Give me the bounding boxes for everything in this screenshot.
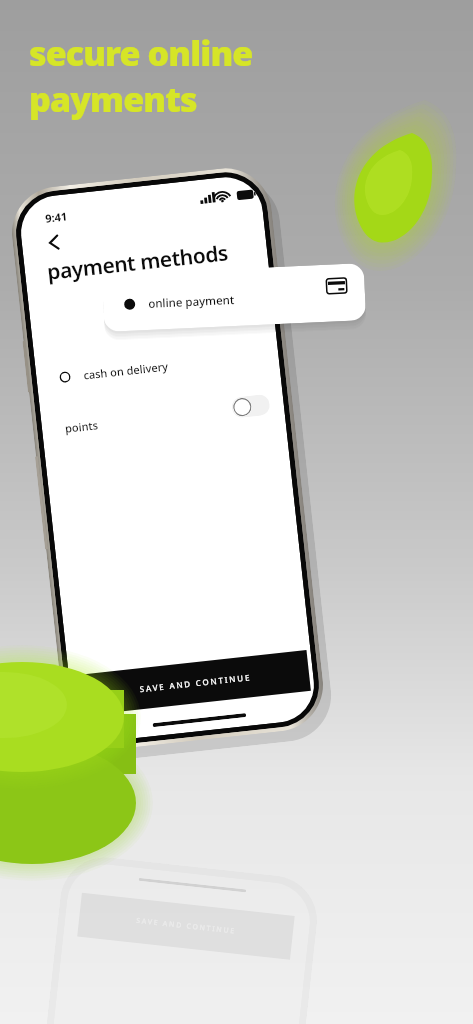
button[interactable]: online payment — [102, 263, 366, 332]
button[interactable]: Back — [40, 228, 68, 256]
button[interactable]: Toggle points — [231, 394, 271, 419]
staticText: online payment — [148, 292, 235, 312]
staticText: SAVE AND CONTINUE — [139, 671, 253, 694]
button[interactable]: points — [57, 388, 283, 442]
staticText: payments — [29, 76, 197, 122]
staticText: payment methods — [46, 238, 230, 287]
button[interactable]: cash on delivery — [52, 339, 274, 393]
staticText: 9:41 — [44, 208, 68, 226]
staticText: secure online — [29, 30, 253, 76]
staticText: points — [64, 417, 99, 436]
staticText: cash on delivery — [83, 358, 169, 383]
button[interactable]: SAVE AND CONTINUE — [80, 650, 311, 715]
